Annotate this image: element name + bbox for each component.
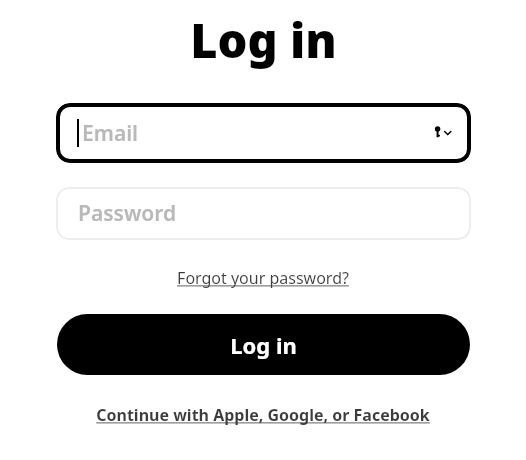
staticText: Continue with Apple, Google, or Facebook (96, 404, 430, 426)
button[interactable]: Continue with Apple, Google, or Facebook (90, 401, 436, 429)
staticText: Password (78, 199, 177, 228)
staticText: Log in (230, 330, 297, 360)
staticText: Email (82, 119, 139, 148)
button[interactable]: Autofill password (427, 118, 457, 148)
button[interactable]: Password (56, 187, 471, 240)
staticText: Forgot your password? (177, 267, 349, 289)
staticText: Log in (190, 8, 337, 72)
button[interactable]: Email (56, 103, 471, 163)
button[interactable]: Log in (57, 314, 470, 375)
button[interactable]: Forgot your password? (171, 263, 355, 293)
